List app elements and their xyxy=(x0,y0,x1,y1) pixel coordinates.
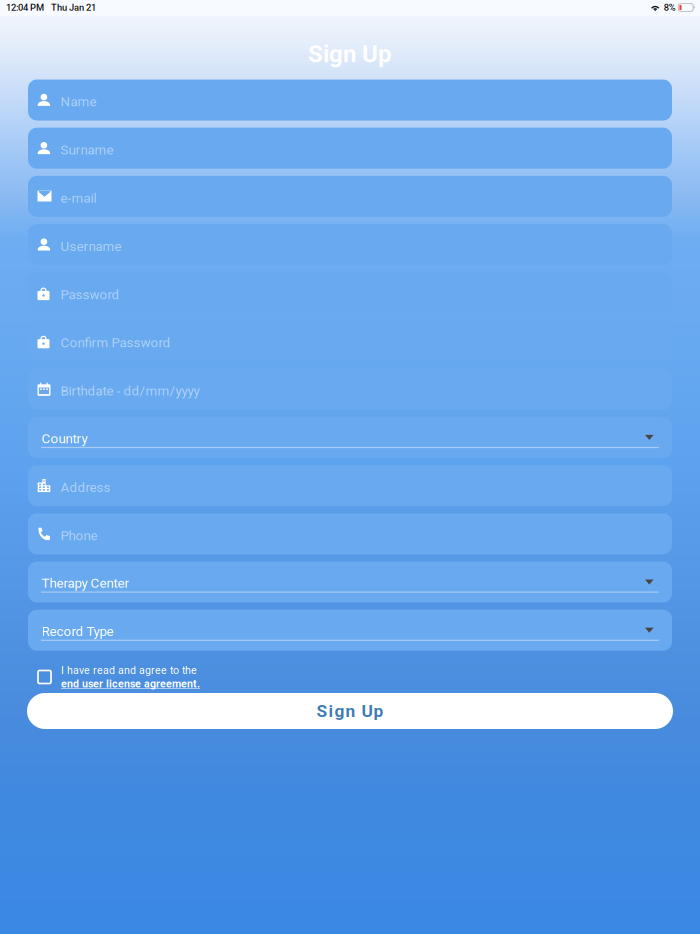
button[interactable]: Password xyxy=(28,272,672,313)
staticText: Birthdate - dd/mm/yyyy xyxy=(60,383,199,399)
staticText: Sign Up xyxy=(316,701,383,721)
staticText: Record Type xyxy=(41,624,113,639)
staticText: Sign Up xyxy=(308,40,392,68)
staticText: I have read and agree to the xyxy=(61,664,197,676)
button[interactable]: Phone xyxy=(28,513,672,554)
button[interactable]: Birthdate - dd/mm/yyyy xyxy=(28,369,672,410)
staticText: 12:04 PM xyxy=(6,2,44,13)
button[interactable]: Username xyxy=(28,224,672,265)
button[interactable]: Name xyxy=(28,79,672,120)
staticText: Phone xyxy=(60,528,97,543)
staticText: 8% xyxy=(664,2,676,13)
button[interactable]: Confirm Password xyxy=(28,320,672,361)
staticText: Address xyxy=(60,480,110,495)
button[interactable]: Address xyxy=(28,465,672,506)
button[interactable]: Country xyxy=(28,417,672,458)
staticText: Confirm Password xyxy=(60,335,170,351)
staticText: Password xyxy=(60,287,119,302)
staticText: Country xyxy=(41,431,87,446)
button[interactable]: Record Type xyxy=(28,610,672,651)
button[interactable]: Sign Up xyxy=(27,693,673,729)
button[interactable]: e-mail xyxy=(28,176,672,217)
staticText: Surname xyxy=(60,142,113,158)
button[interactable]: Surname xyxy=(28,128,672,169)
button[interactable]: Agree to the end user license agreement xyxy=(36,668,53,685)
staticText: Name xyxy=(60,94,96,110)
staticText: e-mail xyxy=(60,190,96,206)
button[interactable]: Therapy Center xyxy=(28,561,672,602)
staticText: Thu Jan 21 xyxy=(51,2,96,13)
staticText: end user license agreement. xyxy=(61,677,200,690)
staticText: Username xyxy=(60,239,121,254)
button[interactable]: end user license agreement. xyxy=(61,677,200,690)
staticText: Therapy Center xyxy=(41,575,129,591)
